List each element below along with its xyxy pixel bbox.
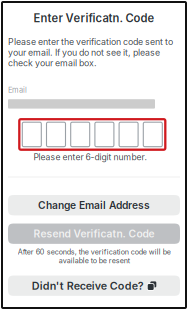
button[interactable]: Change Email Address bbox=[8, 195, 180, 215]
staticText: Didn't Receive Code? bbox=[32, 279, 144, 292]
staticText: Resend Verificatn. Code bbox=[33, 227, 154, 240]
staticText: After 60 seconds, the verification code … bbox=[17, 247, 170, 265]
staticText: Change Email Address bbox=[38, 199, 150, 211]
staticText: Please enter 6-digit number. bbox=[33, 152, 146, 162]
staticText: Email bbox=[8, 85, 27, 94]
staticText: Enter Verificatn. Code bbox=[33, 11, 154, 25]
button[interactable]: Didn't Receive Code? bbox=[8, 275, 180, 296]
button[interactable]: Resend Verificatn. Code bbox=[8, 223, 180, 244]
staticText: Please enter the verification code sent … bbox=[8, 36, 173, 68]
